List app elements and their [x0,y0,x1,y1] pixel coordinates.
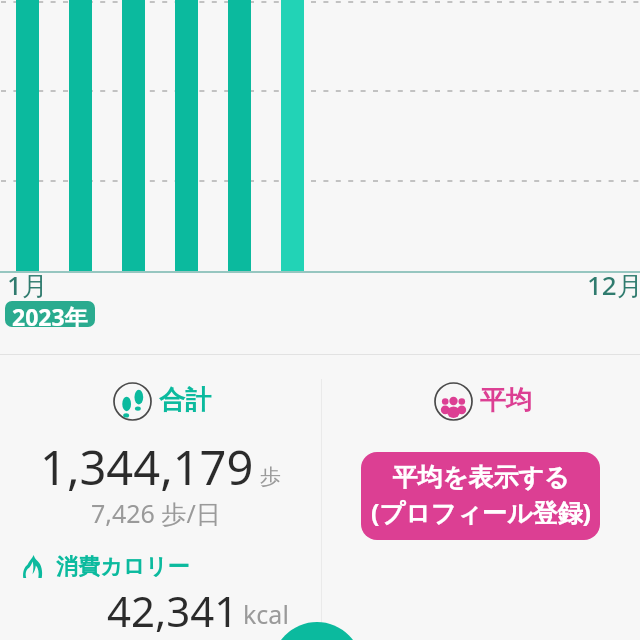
staticText: 合計 [159,384,211,417]
staticText: 7,426 歩/日 [91,496,221,530]
button[interactable]: 2023年 [5,301,95,327]
staticText: 2023年 [12,301,88,327]
button[interactable]: Add record [272,622,362,640]
staticText: 42,341 [107,582,239,639]
staticText: kcal [243,597,289,631]
staticText: 1,344,179 [40,435,254,499]
staticText: 平均 [480,384,532,417]
staticText: 1月 [7,267,48,303]
staticText: 消費カロリー [56,553,190,581]
button[interactable]: 平均を表示する (プロフィール登録) [361,452,600,540]
staticText: 歩 [260,464,281,490]
staticText: 12月 [587,267,640,303]
staticText: 平均を表示する (プロフィール登録) [371,462,591,530]
